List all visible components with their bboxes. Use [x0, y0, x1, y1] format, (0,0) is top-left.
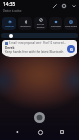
button[interactable]: Back	[11, 126, 23, 138]
staticText: Auto-rotate	[65, 25, 77, 28]
staticText: Flashlight	[51, 25, 61, 28]
button[interactable]: Recent apps	[56, 126, 68, 138]
staticText: Do Not Disturb	[34, 23, 47, 29]
button[interactable]: Flashlight	[49, 17, 62, 30]
staticText: G	[70, 47, 73, 52]
button[interactable]: Do Not Disturb	[34, 17, 47, 30]
button[interactable]: Home	[34, 126, 46, 138]
button[interactable]: Settings	[61, 3, 67, 9]
button[interactable]: App shortcut	[34, 112, 45, 123]
button[interactable]: Expand	[71, 3, 77, 9]
staticText: 14:35	[3, 1, 16, 8]
staticText: Keep hands free with the latest Bluetoot…	[5, 50, 64, 54]
button[interactable]: Bluetooth	[18, 17, 32, 30]
staticText: Bluetooth	[20, 25, 31, 28]
button[interactable]: Auto-rotate	[64, 17, 77, 30]
staticText: Device is active	[3, 9, 22, 13]
button[interactable]: Brightness	[1, 33, 78, 38]
button[interactable]: Internet	[2, 17, 16, 30]
staticText: Derek	[5, 46, 15, 50]
staticText: E-mail · new proposal sent · Pixel 12 ru…	[9, 41, 66, 45]
staticText: Internet	[5, 25, 14, 28]
button[interactable]: Edit tiles	[52, 3, 58, 9]
button[interactable]: E-mail · new proposal sent · Pixel 12 ru…	[2, 40, 77, 57]
